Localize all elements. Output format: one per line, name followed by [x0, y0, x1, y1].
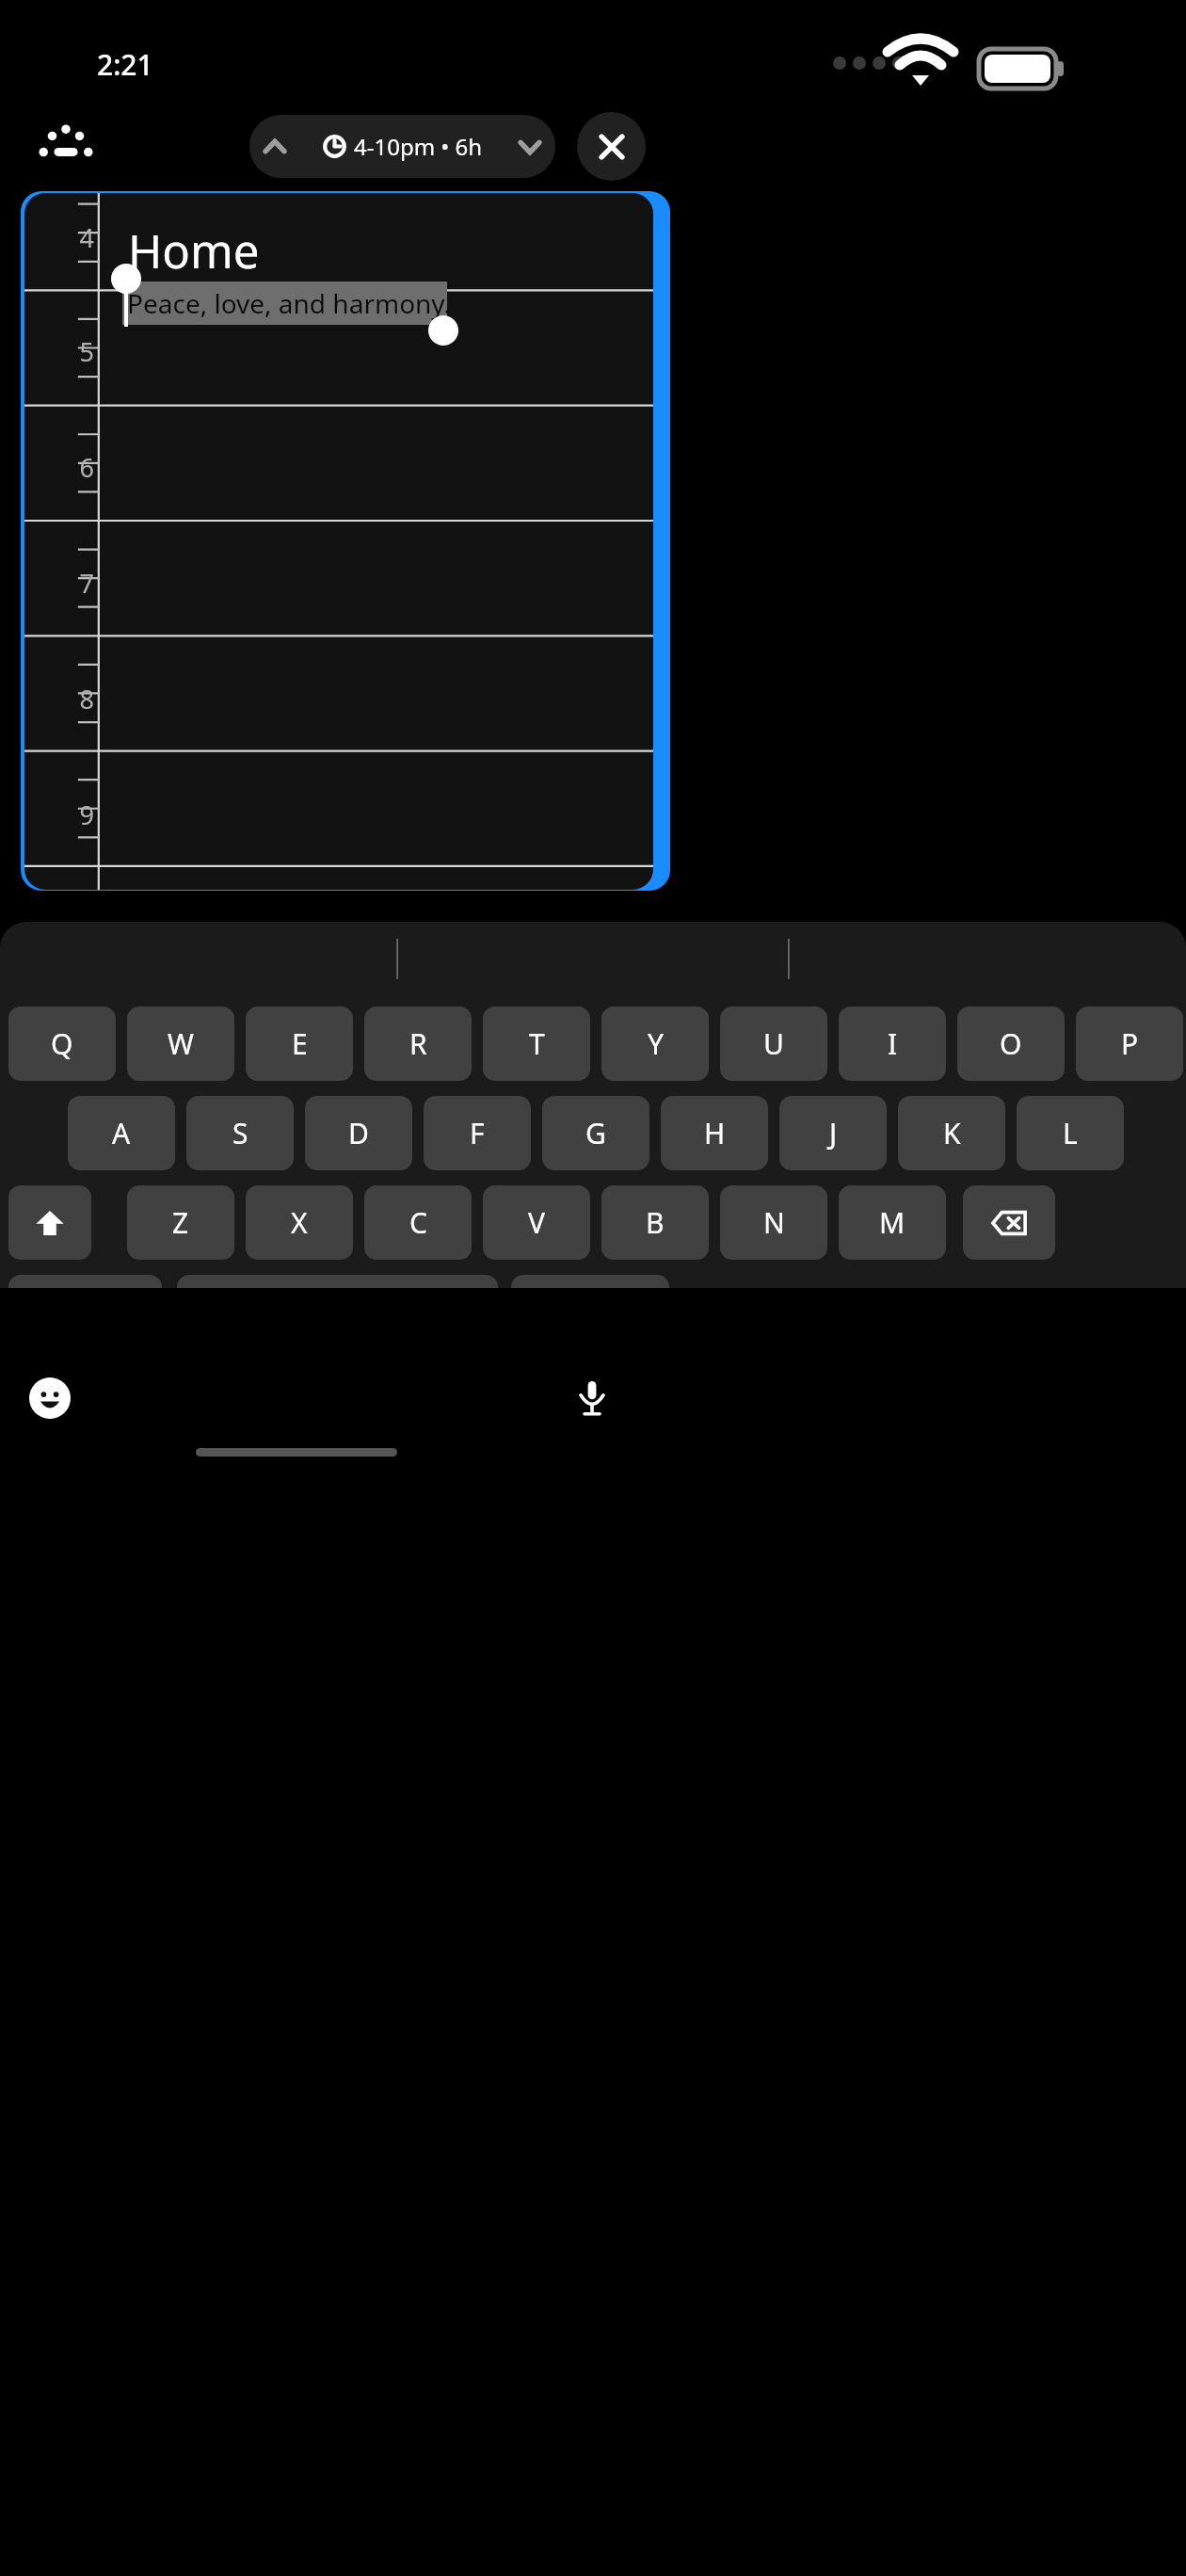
- staticText: L: [1063, 1114, 1078, 1152]
- button[interactable]: W: [127, 1006, 234, 1081]
- staticText: J: [829, 1114, 838, 1152]
- button[interactable]: A: [68, 1096, 175, 1170]
- button[interactable]: U: [720, 1006, 827, 1081]
- staticText: 4-10pm • 6h: [354, 131, 483, 162]
- staticText: Q: [51, 1024, 73, 1063]
- button[interactable]: Q: [8, 1006, 116, 1081]
- staticText: E: [292, 1024, 308, 1063]
- staticText: V: [528, 1203, 545, 1242]
- button[interactable]: C: [364, 1185, 472, 1260]
- staticText: P: [1121, 1024, 1139, 1063]
- button[interactable]: Shift: [8, 1185, 91, 1260]
- button[interactable]: Y: [601, 1006, 709, 1081]
- staticText: I: [888, 1024, 898, 1063]
- button[interactable]: Z: [127, 1185, 234, 1260]
- button[interactable]: N: [720, 1185, 827, 1260]
- button[interactable]: 4-10pm • 6h: [249, 115, 555, 178]
- staticText: A: [112, 1114, 131, 1152]
- staticText: H: [704, 1114, 726, 1152]
- button[interactable]: K: [898, 1096, 1005, 1170]
- button[interactable]: Space: [177, 1275, 498, 1288]
- staticText: 2:21: [97, 45, 153, 84]
- button[interactable]: 4: [24, 193, 653, 890]
- staticText: U: [763, 1024, 784, 1063]
- staticText: W: [168, 1024, 194, 1063]
- button[interactable]: Schedule view: [24, 105, 107, 187]
- staticText: B: [646, 1203, 665, 1242]
- staticText: G: [585, 1114, 606, 1152]
- staticText: O: [1000, 1024, 1022, 1063]
- staticText: S: [232, 1114, 248, 1152]
- button[interactable]: X: [246, 1185, 353, 1260]
- button[interactable]: M: [839, 1185, 946, 1260]
- staticText: R: [409, 1024, 427, 1063]
- button[interactable]: B: [601, 1185, 709, 1260]
- staticText: M: [879, 1203, 906, 1242]
- staticText: 8: [51, 682, 94, 716]
- button[interactable]: Emoji: [24, 1372, 76, 1425]
- staticText: F: [470, 1114, 485, 1152]
- button[interactable]: Enter: [511, 1275, 669, 1288]
- button[interactable]: Selection end handle: [428, 315, 458, 346]
- staticText: 4: [51, 220, 94, 255]
- button[interactable]: L: [1017, 1096, 1124, 1170]
- staticText: X: [291, 1203, 308, 1242]
- button[interactable]: V: [483, 1185, 590, 1260]
- button[interactable]: J: [779, 1096, 887, 1170]
- button[interactable]: Backspace: [963, 1185, 1055, 1260]
- staticText: Y: [648, 1024, 664, 1063]
- button[interactable]: I: [839, 1006, 946, 1081]
- button[interactable]: E: [246, 1006, 353, 1081]
- button[interactable]: S: [186, 1096, 294, 1170]
- button[interactable]: R: [364, 1006, 472, 1081]
- staticText: 9: [51, 797, 94, 832]
- button[interactable]: H: [661, 1096, 768, 1170]
- staticText: T: [529, 1024, 545, 1063]
- button[interactable]: T: [483, 1006, 590, 1081]
- staticText: N: [763, 1203, 785, 1242]
- button[interactable]: Selection start handle: [111, 264, 141, 294]
- staticText: K: [943, 1114, 961, 1152]
- staticText: C: [409, 1203, 427, 1242]
- staticText: 5: [51, 334, 94, 369]
- button[interactable]: F: [424, 1096, 531, 1170]
- staticText: Z: [172, 1203, 189, 1242]
- staticText: 6: [51, 450, 94, 485]
- button[interactable]: 123: [8, 1275, 162, 1288]
- button[interactable]: O: [957, 1006, 1065, 1081]
- button[interactable]: P: [1076, 1006, 1183, 1081]
- button[interactable]: D: [305, 1096, 412, 1170]
- button[interactable]: Voice input: [566, 1372, 618, 1425]
- staticText: Home: [128, 219, 260, 282]
- button[interactable]: Close: [577, 112, 646, 181]
- button[interactable]: G: [542, 1096, 649, 1170]
- staticText: 7: [51, 566, 94, 601]
- staticText: Peace, love, and harmony.: [127, 285, 452, 321]
- staticText: D: [348, 1114, 369, 1152]
